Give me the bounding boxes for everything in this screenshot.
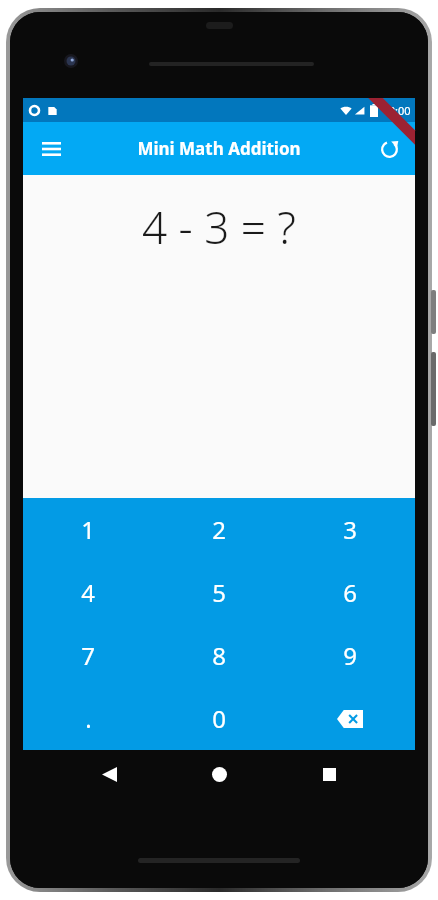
staticText: . [85, 702, 92, 735]
button[interactable]: Refresh question [369, 129, 409, 169]
button[interactable]: 6 [284, 561, 415, 624]
button[interactable]: 2 [153, 498, 284, 561]
staticText: 6 [343, 576, 357, 609]
staticText: 18:00 [382, 103, 411, 118]
button[interactable]: Recent apps [305, 750, 353, 798]
button[interactable]: 8 [153, 624, 284, 687]
staticText: 4 [81, 576, 95, 609]
staticText: Mini Math Addition [137, 137, 301, 160]
button[interactable]: Open navigation menu [31, 129, 71, 169]
button[interactable]: 1 [23, 498, 153, 561]
button[interactable]: 4 [23, 561, 153, 624]
staticText: 1 [81, 513, 95, 546]
button[interactable]: 9 [284, 624, 415, 687]
button[interactable]: Back [85, 750, 133, 798]
staticText: 4 - 3 = ? [142, 197, 296, 257]
button[interactable]: 5 [153, 561, 284, 624]
staticText: 2 [212, 513, 226, 546]
button[interactable]: 3 [284, 498, 415, 561]
staticText: 0 [212, 702, 226, 735]
staticText: 9 [343, 639, 357, 672]
staticText: 5 [212, 576, 226, 609]
button[interactable]: 0 [153, 687, 284, 750]
staticText: 8 [212, 639, 226, 672]
staticText: 3 [343, 513, 357, 546]
button[interactable]: Home [195, 750, 243, 798]
button[interactable]: . [23, 687, 153, 750]
staticText: 7 [81, 639, 95, 672]
button[interactable]: 7 [23, 624, 153, 687]
button[interactable]: Backspace [284, 687, 415, 750]
